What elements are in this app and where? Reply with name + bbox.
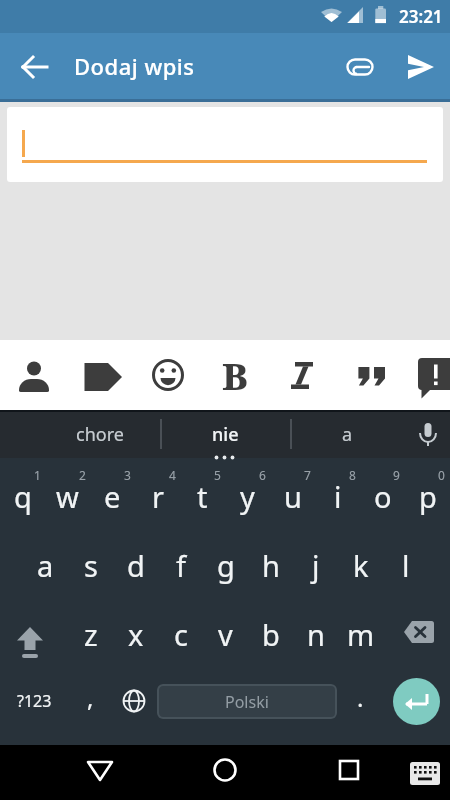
staticText: m — [347, 615, 375, 654]
button[interactable]: n — [293, 605, 338, 663]
button[interactable] — [337, 44, 382, 89]
staticText: 8 — [349, 467, 356, 483]
button[interactable]: w — [45, 467, 90, 525]
button[interactable]: g — [203, 536, 248, 594]
staticText: chore — [76, 422, 124, 447]
button[interactable]: h — [248, 536, 293, 594]
staticText: o — [374, 477, 392, 516]
button[interactable]: b — [248, 605, 293, 663]
button[interactable] — [67, 340, 134, 409]
button[interactable] — [110, 677, 158, 725]
button[interactable]: c — [158, 605, 203, 663]
button[interactable]: ?123 — [4, 679, 64, 723]
button[interactable]: k — [338, 536, 383, 594]
staticText: l — [402, 546, 410, 585]
button[interactable]: f — [158, 536, 203, 594]
staticText: Dodaj wpis — [74, 51, 195, 81]
staticText: z — [84, 615, 98, 654]
button[interactable]: m — [338, 605, 383, 663]
staticText: d — [127, 546, 145, 585]
button[interactable]: , — [70, 675, 110, 719]
staticText: 6 — [259, 467, 266, 483]
staticText: e — [104, 477, 121, 516]
button[interactable]: i — [315, 467, 360, 525]
button[interactable]: l — [383, 536, 428, 594]
staticText: 23:21 — [399, 5, 443, 28]
staticText: j — [312, 546, 320, 585]
staticText: x — [128, 615, 144, 654]
button[interactable]: o — [360, 467, 405, 525]
staticText: ?123 — [17, 690, 52, 712]
staticText: B — [222, 350, 248, 400]
button[interactable]: s — [68, 536, 113, 594]
button[interactable]: q — [0, 467, 45, 525]
button[interactable] — [4, 614, 56, 666]
staticText: w — [56, 477, 79, 516]
button[interactable]: a — [23, 536, 68, 594]
button[interactable] — [7, 107, 443, 182]
button[interactable] — [335, 340, 402, 409]
staticText: q — [14, 477, 32, 516]
staticText: 4 — [169, 467, 176, 483]
staticText: 3 — [124, 467, 131, 483]
staticText: 7 — [304, 467, 311, 483]
button[interactable] — [392, 606, 444, 658]
staticText: a — [37, 546, 54, 585]
button[interactable] — [134, 340, 201, 409]
button[interactable] — [75, 745, 125, 795]
staticText: 2 — [79, 467, 86, 483]
button[interactable]: v — [203, 605, 248, 663]
staticText: b — [262, 615, 280, 654]
staticText: p — [419, 477, 437, 516]
staticText: 1 — [34, 467, 41, 483]
button[interactable] — [393, 678, 440, 725]
button[interactable]: a — [277, 410, 417, 458]
button[interactable]: e — [90, 467, 135, 525]
staticText: t — [197, 477, 208, 516]
staticText: 9 — [393, 467, 400, 483]
button[interactable] — [402, 753, 447, 793]
staticText: v — [218, 615, 233, 654]
staticText: , — [87, 681, 94, 714]
staticText: g — [217, 546, 235, 585]
staticText: s — [84, 546, 98, 585]
button[interactable]: . — [340, 675, 380, 719]
button[interactable] — [200, 745, 250, 795]
button[interactable]: chore — [30, 410, 170, 458]
staticText: nie — [212, 422, 239, 447]
staticText: c — [174, 615, 188, 654]
staticText: 5 — [214, 467, 221, 483]
staticText: 0 — [438, 467, 445, 483]
button[interactable] — [0, 340, 67, 409]
button[interactable]: z — [68, 605, 113, 663]
staticText: i — [334, 477, 342, 516]
button[interactable] — [268, 340, 335, 409]
staticText: k — [353, 546, 369, 585]
staticText: . — [357, 681, 364, 714]
staticText: f — [176, 546, 186, 585]
staticText: u — [284, 477, 302, 516]
button[interactable]: r — [135, 467, 180, 525]
button[interactable]: Polski — [157, 684, 337, 719]
staticText: y — [240, 477, 255, 516]
button[interactable]: j — [293, 536, 338, 594]
button[interactable] — [12, 44, 57, 89]
button[interactable]: p — [405, 467, 450, 525]
button[interactable]: y — [225, 467, 270, 525]
button[interactable] — [405, 412, 450, 457]
button[interactable] — [324, 745, 374, 795]
staticText: n — [307, 615, 325, 654]
button[interactable] — [402, 340, 450, 409]
button[interactable]: u — [270, 467, 315, 525]
staticText: h — [262, 546, 280, 585]
staticText: a — [342, 422, 353, 447]
button[interactable]: nie — [155, 410, 295, 458]
button[interactable]: x — [113, 605, 158, 663]
button[interactable]: B — [201, 340, 268, 409]
staticText: Polski — [225, 691, 269, 713]
staticText: r — [152, 477, 164, 516]
button[interactable]: t — [180, 467, 225, 525]
button[interactable] — [398, 44, 443, 89]
button[interactable]: d — [113, 536, 158, 594]
